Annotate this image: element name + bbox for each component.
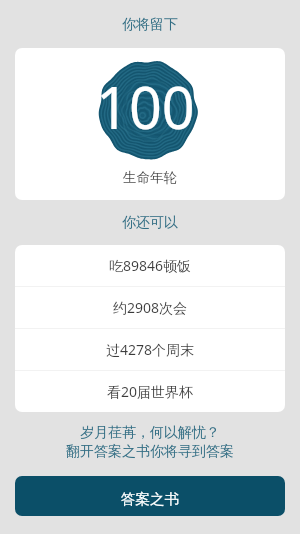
staticText: 岁月荏苒，何以解忧？ 翻开答案之书你将寻到答案 bbox=[0, 424, 300, 460]
staticText: 看20届世界杯 bbox=[107, 382, 194, 401]
staticText: 约2908次会 bbox=[113, 298, 188, 317]
button[interactable]: 看20届世界杯 bbox=[15, 371, 285, 412]
button[interactable]: 吃89846顿饭 bbox=[15, 245, 285, 286]
staticText: 100 bbox=[96, 68, 195, 146]
staticText: 吃89846顿饭 bbox=[109, 256, 192, 275]
button[interactable]: 答案之书 bbox=[15, 476, 285, 516]
staticText: 过4278个周末 bbox=[106, 340, 195, 359]
button[interactable]: 约2908次会 bbox=[15, 287, 285, 328]
staticText: 你将留下 bbox=[122, 16, 178, 34]
staticText: 生命年轮 bbox=[123, 169, 177, 186]
staticText: 你还可以 bbox=[122, 214, 178, 232]
button[interactable]: 过4278个周末 bbox=[15, 329, 285, 370]
staticText: 答案之书 bbox=[121, 490, 179, 508]
